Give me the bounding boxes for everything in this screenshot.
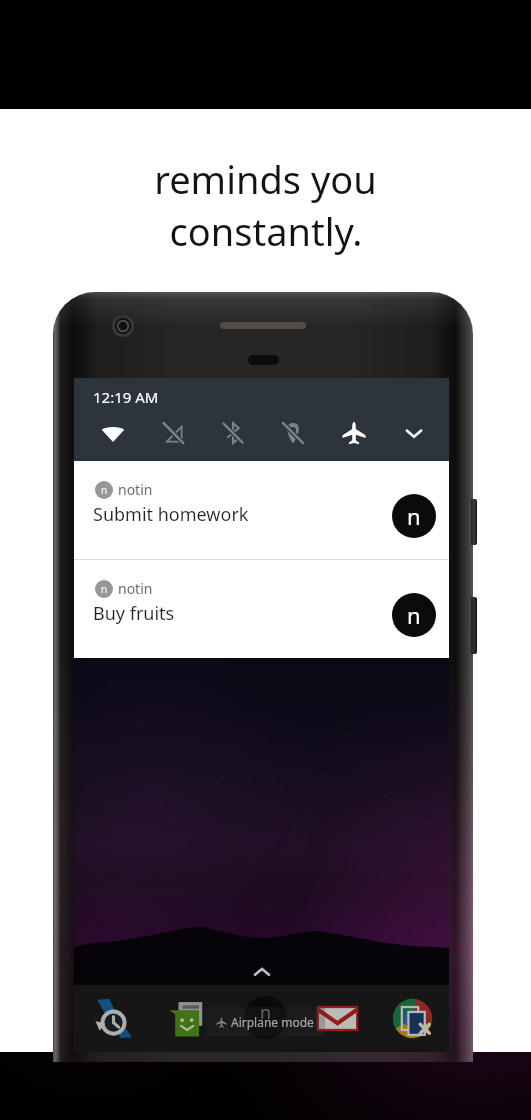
button[interactable]: Wi-Fi — [94, 414, 132, 452]
staticText: Submit homework — [93, 502, 249, 527]
staticText: n — [101, 582, 108, 596]
button[interactable]: Mobile data off — [154, 414, 192, 452]
staticText: notin — [118, 579, 153, 598]
staticText: Airplane mode — [231, 1014, 314, 1030]
button[interactable]: Messages — [163, 994, 211, 1042]
button[interactable]: Clock — [89, 994, 137, 1042]
button[interactable]: Airplane mode — [335, 414, 373, 452]
staticText: n — [260, 1000, 272, 1025]
button[interactable]: Location off — [274, 414, 312, 452]
button[interactable]: Chrome — [388, 994, 436, 1042]
button[interactable]: Bluetooth off — [214, 414, 252, 452]
staticText: n — [407, 600, 421, 630]
staticText: n — [101, 483, 108, 497]
button[interactable]: n — [74, 560, 449, 658]
button[interactable]: Gmail — [313, 994, 361, 1042]
button[interactable]: notin app — [244, 996, 287, 1039]
button[interactable]: n — [74, 461, 449, 559]
button[interactable]: Expand quick settings — [395, 414, 433, 452]
staticText: reminds you — [154, 153, 377, 205]
staticText: Buy fruits — [93, 601, 175, 626]
staticText: 12:19 AM — [93, 387, 159, 407]
staticText: constantly. — [169, 205, 363, 257]
staticText: notin — [118, 480, 153, 499]
staticText: n — [407, 501, 421, 531]
